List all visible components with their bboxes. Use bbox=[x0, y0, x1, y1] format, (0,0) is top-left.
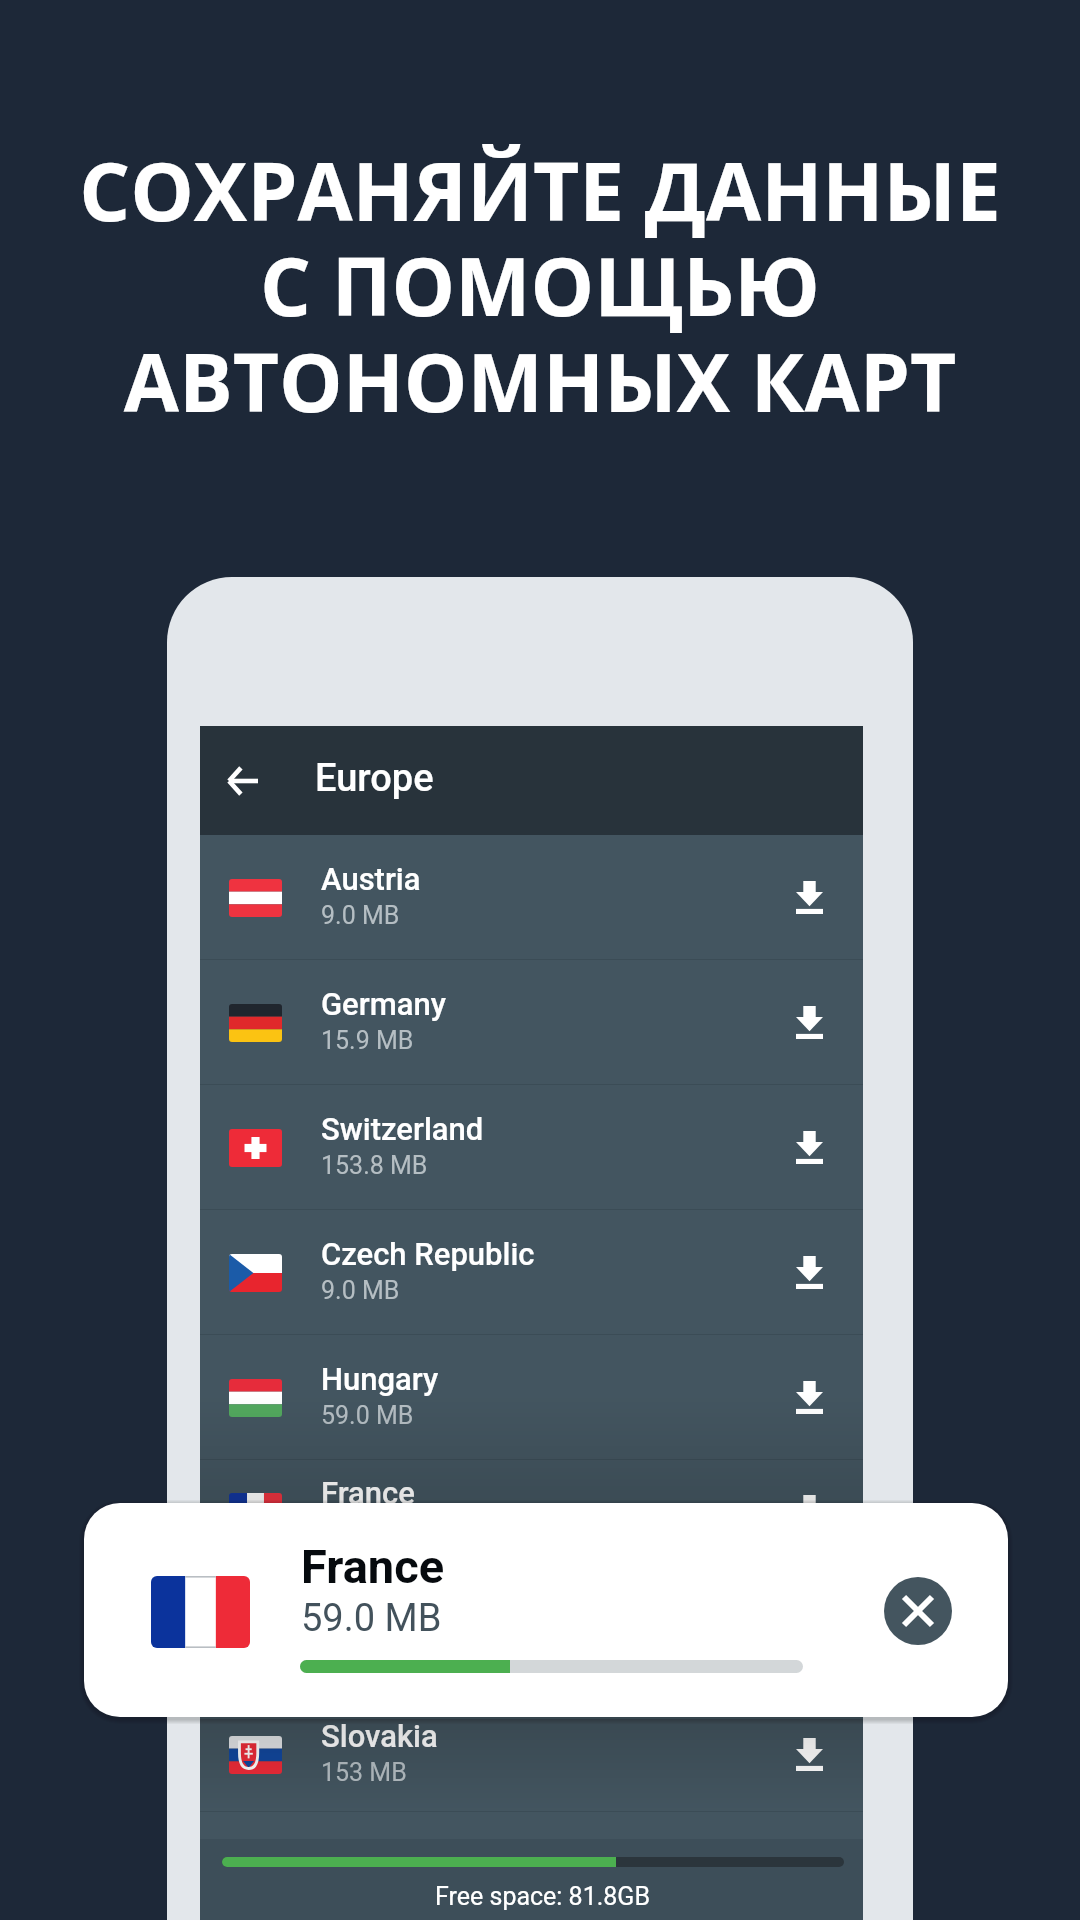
staticText: 153 MB bbox=[321, 1758, 407, 1787]
button[interactable]: Hungary bbox=[200, 1335, 863, 1460]
staticText: France bbox=[321, 1475, 415, 1511]
button[interactable]: Slovakia bbox=[200, 1687, 863, 1812]
staticText: 15.9 MB bbox=[321, 1026, 414, 1055]
button[interactable]: France bbox=[84, 1503, 1008, 1717]
staticText: СОХРАНЯЙТЕ ДАННЫЕ С ПОМОЩЬЮ АВТОНОМНЫХ К… bbox=[0, 135, 1080, 436]
staticText: Europe bbox=[315, 756, 434, 801]
staticText: Hungary bbox=[321, 1361, 439, 1397]
staticText: 81.0 MB bbox=[321, 1640, 414, 1669]
staticText: Switzerland bbox=[321, 1111, 484, 1147]
staticText: 59.0 MB bbox=[321, 1401, 414, 1430]
staticText: 9.0 MB bbox=[321, 1276, 400, 1305]
staticText: Czech Republic bbox=[321, 1236, 535, 1272]
button[interactable]: Germany bbox=[200, 960, 863, 1085]
staticText: Free space: 81.8GB bbox=[211, 1882, 874, 1911]
button[interactable]: France bbox=[200, 1460, 863, 1585]
button[interactable]: Close bbox=[884, 1577, 952, 1645]
button[interactable]: Czech Republic bbox=[200, 1210, 863, 1335]
staticText: Italy bbox=[321, 1600, 380, 1636]
staticText: Austria bbox=[321, 861, 421, 897]
staticText: 59.0 MB bbox=[301, 1596, 442, 1641]
staticText: Slovakia bbox=[321, 1718, 438, 1754]
staticText: 9.0 MB bbox=[321, 901, 400, 930]
button[interactable]: Back bbox=[203, 741, 283, 821]
staticText: France bbox=[301, 1539, 445, 1594]
button[interactable]: Austria bbox=[200, 835, 863, 960]
button[interactable]: Switzerland bbox=[200, 1085, 863, 1210]
button[interactable]: Italy bbox=[200, 1585, 863, 1687]
staticText: Germany bbox=[321, 986, 446, 1022]
staticText: 153.8 MB bbox=[321, 1151, 428, 1180]
